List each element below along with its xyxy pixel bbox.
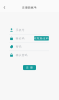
staticText: 确认密码	[16, 53, 28, 57]
button[interactable]: 注 册	[23, 65, 36, 70]
staticText: 验证码	[16, 37, 25, 40]
staticText: 注册新账号	[22, 6, 37, 9]
button[interactable]: 获取验证码	[34, 36, 49, 40]
staticText: 获取验证码	[34, 37, 49, 40]
staticText: 手机号	[16, 28, 25, 32]
button[interactable]: Back	[0, 0, 9, 13]
staticText: 密码	[16, 45, 22, 48]
staticText: 注 册	[26, 66, 33, 69]
